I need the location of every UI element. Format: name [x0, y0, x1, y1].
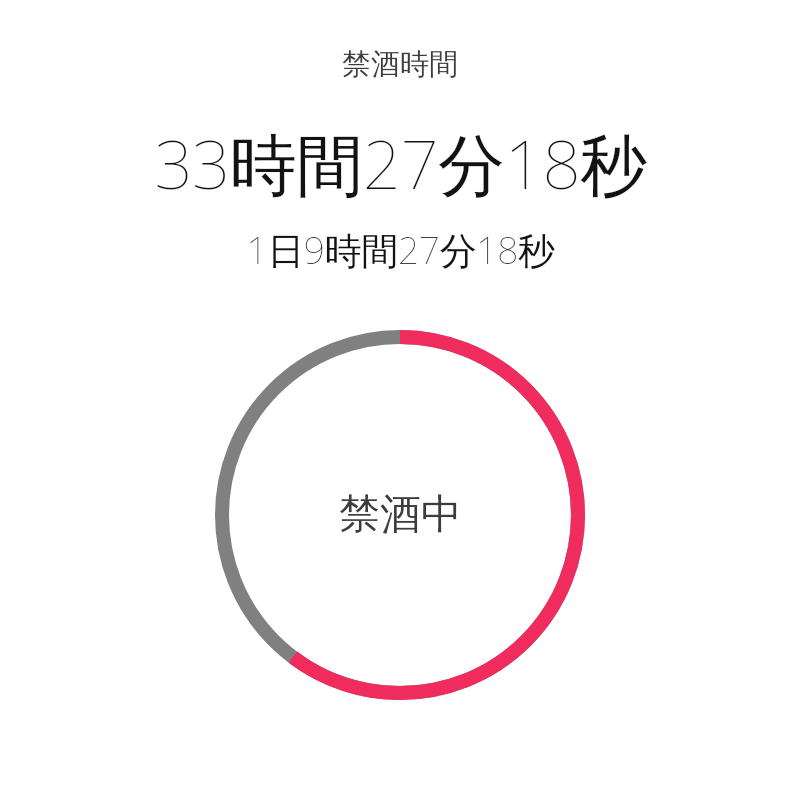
staticText: 33時間27分18秒 [154, 117, 647, 209]
staticText: 禁酒中 [339, 489, 462, 541]
button[interactable]: 禁酒時間 [0, 46, 800, 83]
staticText: 禁酒時間 [342, 46, 458, 83]
staticText: 1日9時間27分18秒 [246, 224, 555, 275]
button[interactable]: 禁酒中 進捗リング [208, 323, 592, 707]
